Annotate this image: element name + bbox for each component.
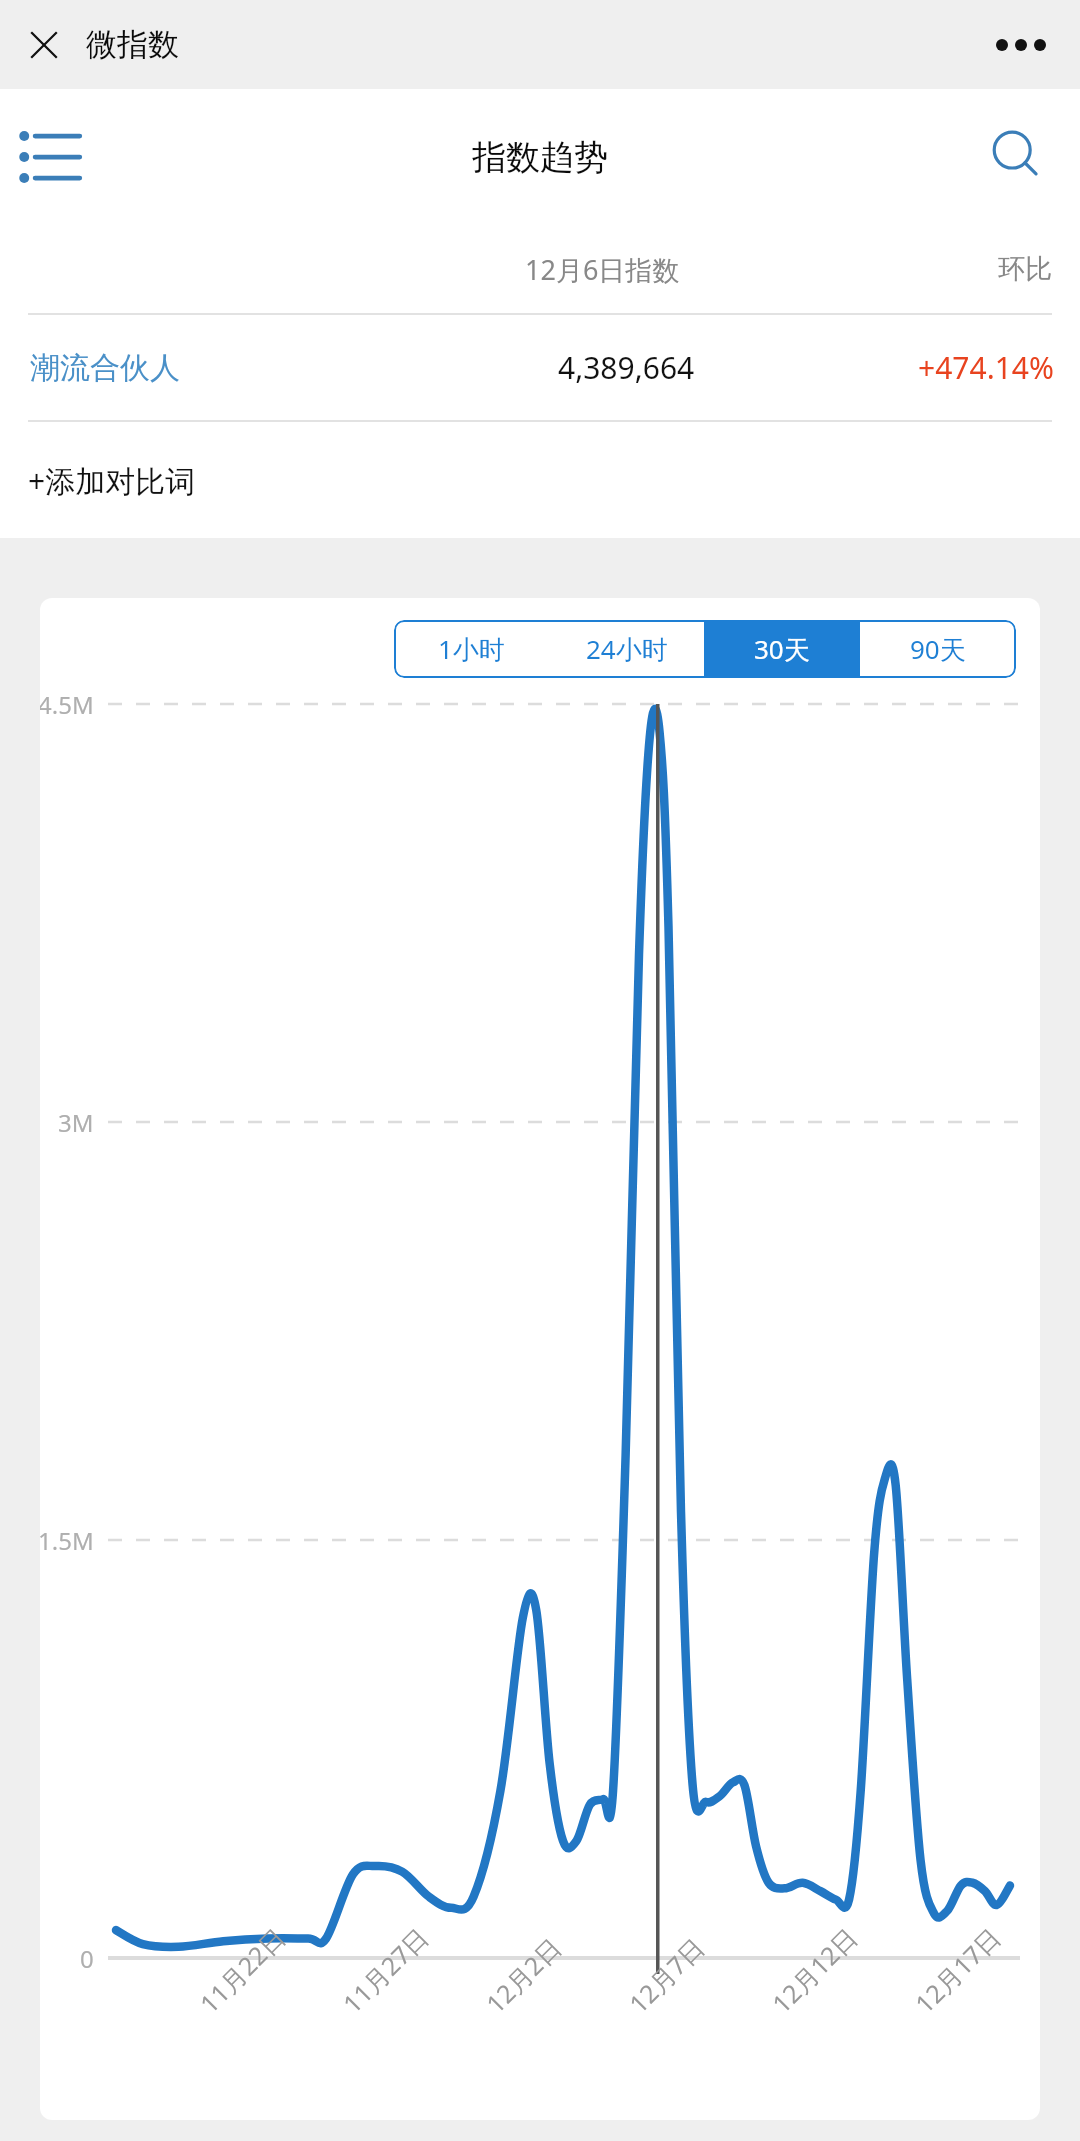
staticText: 30天 — [754, 631, 810, 667]
button[interactable]: 1小时 — [394, 620, 549, 678]
staticText: 潮流合伙人 — [30, 349, 180, 387]
button[interactable]: +添加对比词 — [28, 460, 196, 501]
button[interactable]: 90天 — [860, 620, 1016, 678]
staticText: 90天 — [910, 631, 966, 667]
staticText: 指数趋势 — [472, 136, 608, 179]
button[interactable]: 24小时 — [549, 620, 704, 678]
button[interactable]: List — [12, 119, 88, 195]
staticText: 环比 — [998, 252, 1052, 286]
button[interactable]: Close — [12, 13, 76, 77]
button[interactable]: More options — [986, 10, 1056, 80]
staticText: 4,389,664 — [558, 347, 695, 388]
button[interactable]: 潮流合伙人 — [0, 315, 1080, 420]
staticText: 微指数 — [86, 25, 179, 64]
staticText: 12月6日指数 — [525, 251, 680, 288]
staticText: 1小时 — [438, 631, 505, 667]
button[interactable]: 30天 — [704, 620, 860, 678]
staticText: 24小时 — [586, 631, 668, 667]
staticText: +474.14% — [918, 347, 1054, 388]
button[interactable]: Search — [978, 117, 1058, 197]
